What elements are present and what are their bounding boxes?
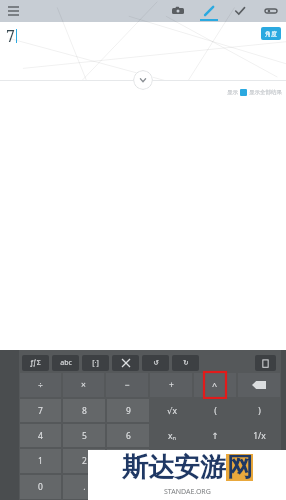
button[interactable]: − (106, 373, 148, 397)
button[interactable]: [·] (82, 355, 109, 371)
button[interactable]: 0 (20, 475, 61, 499)
staticText: 3 (126, 455, 131, 467)
staticText: 6 (126, 430, 131, 442)
button[interactable]: Backspace (238, 373, 280, 397)
staticText: 1/x (253, 430, 266, 442)
staticText: ÷ (38, 379, 43, 391)
button[interactable] (107, 475, 149, 499)
button[interactable]: Expand keypad (133, 70, 153, 90)
staticText: × (81, 379, 86, 391)
button[interactable]: ↑ (194, 424, 236, 447)
button[interactable]: Angle mode (261, 27, 281, 40)
staticText: 7 (38, 405, 43, 417)
staticText: 5 (82, 430, 87, 442)
staticText: 4 (38, 430, 43, 442)
button[interactable]: 6 (107, 424, 149, 447)
button[interactable]: Show all results (240, 89, 247, 96)
button[interactable]: xₙ (151, 424, 192, 447)
staticText: STANDAE.ORG (164, 487, 211, 497)
button[interactable]: Shuffle (112, 355, 139, 371)
staticText: . (83, 481, 86, 493)
staticText: ( (214, 405, 217, 417)
staticText: 1 (38, 455, 43, 467)
button[interactable]: Confirm (224, 0, 255, 22)
staticText: abc (60, 358, 72, 368)
button[interactable] (151, 475, 192, 499)
staticText: ^ (212, 379, 218, 391)
button[interactable]: ÷ (20, 373, 61, 397)
staticText: ↺ (153, 359, 159, 367)
button[interactable]: ↻ (172, 355, 199, 371)
staticText: [·] (92, 358, 99, 368)
button[interactable]: √x (151, 399, 192, 422)
button[interactable]: Camera (162, 0, 193, 22)
staticText: 显示 (227, 89, 238, 96)
staticText: 7 (6, 25, 15, 47)
button[interactable]: 1/x (238, 424, 280, 447)
button[interactable]: Menu (3, 1, 23, 21)
button[interactable]: ) (238, 399, 280, 422)
staticText: 网 (227, 451, 253, 484)
button[interactable]: ^ (194, 373, 236, 397)
staticText: 2 (82, 455, 87, 467)
staticText: ƒ∫Σ (30, 358, 41, 368)
button[interactable]: 9 (107, 399, 149, 422)
button[interactable]: 5 (63, 424, 105, 447)
button[interactable]: ( (194, 399, 236, 422)
button[interactable]: abc (52, 355, 79, 371)
staticText: 显示全部结果 (249, 89, 282, 96)
staticText: + (169, 379, 174, 391)
button[interactable] (238, 475, 280, 499)
button[interactable]: 4 (20, 424, 61, 447)
button[interactable]: 8 (63, 399, 105, 422)
button[interactable] (194, 449, 236, 473)
button[interactable]: Draw (193, 0, 224, 22)
button[interactable]: 7 (20, 399, 61, 422)
button[interactable] (151, 449, 192, 473)
staticText: ↻ (183, 359, 189, 367)
staticText: xₙ (168, 430, 176, 442)
button[interactable]: × (63, 373, 104, 397)
button[interactable]: ↺ (142, 355, 169, 371)
staticText: 9 (126, 405, 131, 417)
button[interactable]: Clear all (255, 355, 276, 371)
staticText: − (125, 379, 130, 391)
button[interactable]: . (63, 475, 105, 499)
staticText: 斯达安游 (122, 451, 226, 484)
staticText: 8 (82, 405, 87, 417)
staticText: ) (258, 405, 261, 417)
button[interactable]: Preview (255, 0, 286, 22)
button[interactable]: + (150, 373, 192, 397)
button[interactable]: 2 (63, 449, 105, 473)
staticText: √x (167, 405, 177, 417)
button[interactable]: 3 (107, 449, 149, 473)
staticText: 角度 (265, 30, 277, 38)
staticText: 0 (38, 481, 43, 493)
staticText: ↑ (211, 431, 219, 441)
button[interactable] (238, 449, 280, 473)
button[interactable]: ƒ∫Σ (22, 355, 49, 371)
button[interactable] (194, 475, 236, 499)
button[interactable]: 1 (20, 449, 61, 473)
